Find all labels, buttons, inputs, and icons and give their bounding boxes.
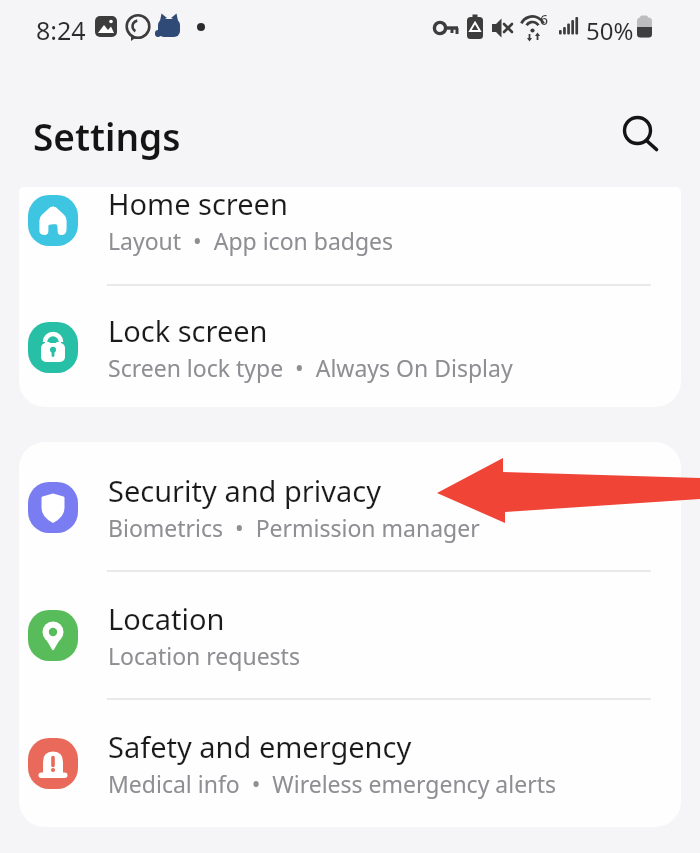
staticText: 50% <box>586 14 634 47</box>
staticText: Location <box>108 599 225 638</box>
button[interactable] <box>615 110 661 156</box>
button[interactable]: Security and privacy <box>19 443 681 571</box>
staticText: Medical info • Wireless emergency alerts <box>108 768 556 799</box>
button[interactable]: Lock screen <box>19 283 681 411</box>
button[interactable]: Safety and emergency <box>19 699 681 827</box>
staticText: Biometrics • Permission manager <box>108 512 480 543</box>
button[interactable]: Location <box>19 571 681 699</box>
staticText: Security and privacy <box>108 471 381 510</box>
button[interactable]: Home screen <box>19 156 681 284</box>
staticText: Lock screen <box>108 311 268 350</box>
staticText: 8:24 <box>36 13 86 47</box>
staticText: 6 <box>540 10 549 29</box>
staticText: Location requests <box>108 640 300 671</box>
staticText: Home screen <box>108 184 288 223</box>
staticText: Layout • App icon badges <box>108 225 394 256</box>
staticText: Safety and emergency <box>108 727 412 766</box>
staticText: Screen lock type • Always On Display <box>108 352 513 383</box>
staticText: Settings <box>33 111 181 161</box>
